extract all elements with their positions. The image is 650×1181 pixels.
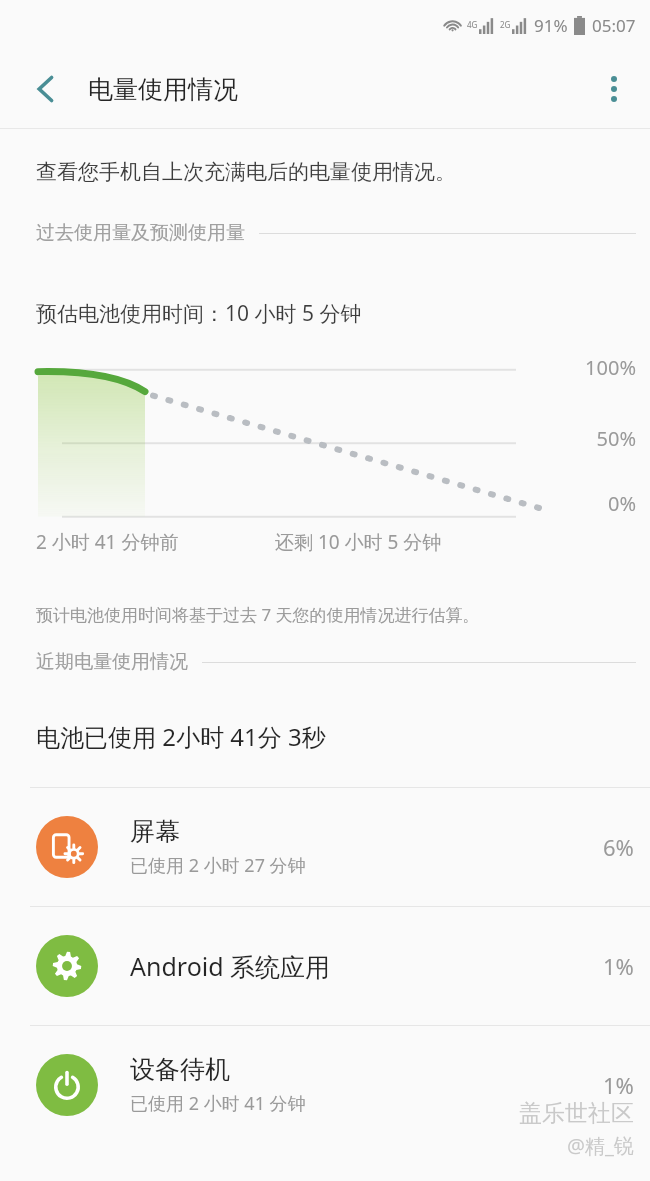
staticText: 电量使用情况 bbox=[88, 74, 238, 105]
staticText: 50% bbox=[596, 425, 636, 452]
staticText: 2 小时 41 分钟前 bbox=[36, 529, 179, 555]
staticText: 预计电池使用时间将基于过去 7 天您的使用情况进行估算。 bbox=[36, 603, 480, 626]
button[interactable]: 设备待机 bbox=[0, 1026, 650, 1144]
staticText: 电池已使用 2小时 41分 3秒 bbox=[36, 720, 326, 753]
staticText: 盖乐世社区 bbox=[519, 1099, 634, 1128]
staticText: 0% bbox=[607, 490, 636, 517]
staticText: Android 系统应用 bbox=[130, 949, 331, 983]
staticText: 查看您手机自上次充满电后的电量使用情况。 bbox=[36, 159, 456, 185]
staticText: 4G bbox=[467, 19, 478, 30]
button[interactable]: Back bbox=[22, 65, 70, 113]
staticText: 91% bbox=[534, 14, 568, 37]
staticText: 过去使用量及预测使用量 bbox=[36, 221, 245, 245]
staticText: 100% bbox=[585, 354, 636, 381]
staticText: 已使用 2 小时 27 分钟 bbox=[130, 853, 306, 878]
button[interactable]: Android 系统应用 bbox=[0, 907, 650, 1025]
staticText: 05:07 bbox=[592, 14, 636, 37]
staticText: 1% bbox=[603, 1070, 634, 1100]
staticText: 预估电池使用时间：10 小时 5 分钟 bbox=[36, 299, 362, 328]
staticText: 1% bbox=[603, 951, 634, 981]
staticText: @精_锐 bbox=[567, 1132, 634, 1159]
staticText: 2G bbox=[500, 19, 511, 30]
staticText: 已使用 2 小时 41 分钟 bbox=[130, 1091, 306, 1116]
staticText: 6% bbox=[603, 832, 634, 862]
staticText: 设备待机 bbox=[130, 1054, 230, 1085]
staticText: 近期电量使用情况 bbox=[36, 650, 188, 674]
button[interactable]: 屏幕 bbox=[0, 788, 650, 906]
button[interactable]: More options bbox=[590, 65, 638, 113]
staticText: 屏幕 bbox=[130, 816, 180, 847]
staticText: 还剩 10 小时 5 分钟 bbox=[275, 529, 442, 555]
